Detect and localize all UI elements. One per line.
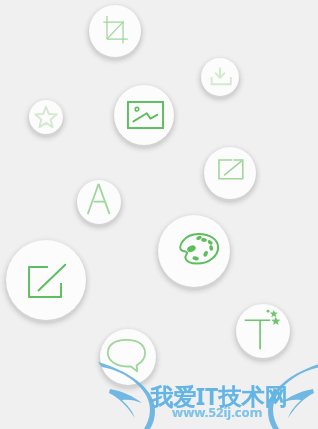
button[interactable]: Download — [201, 58, 239, 96]
button[interactable]: Crop — [89, 5, 141, 57]
button[interactable]: Palette — [158, 215, 230, 287]
button[interactable]: Magic text — [236, 304, 290, 358]
button[interactable]: Favourite — [29, 100, 63, 134]
button[interactable]: Text — [77, 180, 121, 224]
staticText: 我爱IT技术网 — [150, 380, 288, 411]
button[interactable]: Comment — [100, 329, 156, 385]
button[interactable]: Open in new — [204, 147, 256, 199]
button[interactable]: Edit — [6, 240, 86, 320]
button[interactable]: Photo — [114, 85, 174, 145]
staticText: www.52ij.com — [172, 403, 263, 421]
